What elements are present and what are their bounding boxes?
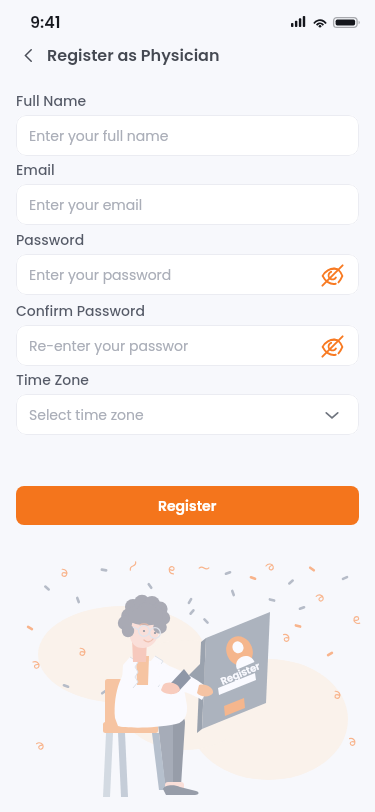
staticText: Time Zone — [16, 370, 89, 390]
staticText: Enter your email — [29, 195, 345, 215]
staticText: Confirm Password — [16, 301, 145, 321]
staticText: Enter your password — [29, 265, 319, 285]
button[interactable]: Register — [16, 486, 359, 525]
button[interactable]: Toggle password visibility — [319, 333, 345, 359]
staticText: Register — [158, 496, 217, 516]
staticText: Password — [16, 230, 85, 250]
button[interactable]: Enter your full name — [16, 115, 359, 156]
button[interactable]: Open time zone list — [319, 402, 345, 428]
button[interactable]: Enter your password — [16, 254, 359, 295]
staticText: Re-enter your passwor — [29, 336, 319, 356]
staticText: Enter your full name — [29, 126, 345, 146]
staticText: Email — [16, 160, 55, 180]
button[interactable]: Toggle password visibility — [319, 262, 345, 288]
button[interactable]: Select time zone — [16, 394, 359, 435]
staticText: Register as Physician — [47, 44, 220, 66]
staticText: Select time zone — [29, 405, 319, 425]
staticText: Full Name — [16, 91, 87, 111]
button[interactable]: Enter your email — [16, 184, 359, 225]
staticText: 9:41 — [30, 11, 61, 33]
button[interactable]: Back — [13, 40, 43, 70]
button[interactable]: Re-enter your passwor — [16, 325, 359, 366]
